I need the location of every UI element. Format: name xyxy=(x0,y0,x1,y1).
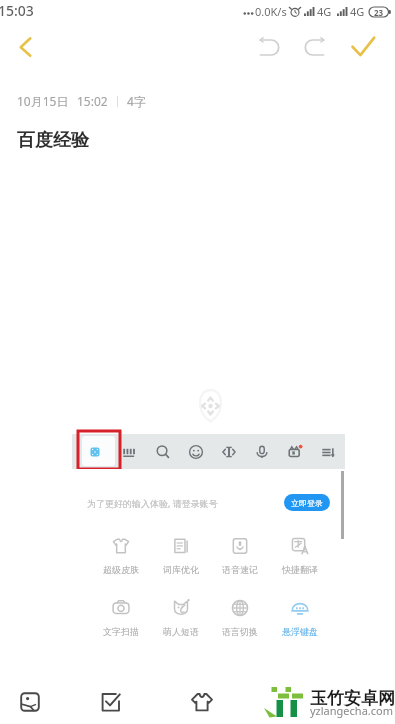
button[interactable]: Voice xyxy=(246,434,278,469)
button[interactable]: Back xyxy=(6,27,46,67)
button[interactable]: Panel xyxy=(79,434,111,469)
staticText: yzlangecha.com xyxy=(310,703,393,718)
button[interactable] xyxy=(154,592,208,638)
button[interactable] xyxy=(94,530,148,576)
staticText: 4G xyxy=(350,4,365,19)
staticText: 百度经验 xyxy=(17,129,89,152)
button[interactable]: Checklist xyxy=(92,683,130,721)
button[interactable]: Search xyxy=(147,434,179,469)
staticText: 10月15日 xyxy=(17,93,69,109)
button[interactable]: Undo xyxy=(256,34,284,60)
staticText: 语音速记 xyxy=(222,564,258,575)
staticText: 快捷翻译 xyxy=(282,564,318,575)
button[interactable]: Emoji xyxy=(180,434,212,469)
staticText: 玉竹安卓网 xyxy=(310,688,395,709)
staticText: 萌人短语 xyxy=(163,626,199,637)
staticText: 15:02 xyxy=(77,93,108,109)
button[interactable]: Insert image xyxy=(11,683,49,721)
button[interactable]: Move keyboard xyxy=(193,387,227,423)
button[interactable]: Keyboard xyxy=(113,434,145,469)
button[interactable]: More xyxy=(313,434,345,469)
staticText: 立即登录 xyxy=(291,498,323,508)
staticText: 悬浮键盘 xyxy=(282,626,318,637)
staticText: 15:03 xyxy=(0,1,34,20)
button[interactable] xyxy=(273,592,327,638)
staticText: 4G xyxy=(317,4,332,19)
button[interactable]: Style xyxy=(183,683,221,721)
button[interactable] xyxy=(154,530,208,576)
button[interactable]: Theme xyxy=(279,434,311,469)
staticText: 23 xyxy=(374,7,384,18)
button[interactable] xyxy=(213,530,267,576)
staticText: 语言切换 xyxy=(222,626,258,637)
staticText: 文字扫描 xyxy=(103,626,139,637)
button[interactable]: Redo xyxy=(300,34,328,60)
button[interactable]: 立即登录 xyxy=(284,494,330,511)
staticText: 超级皮肤 xyxy=(103,564,139,575)
button[interactable] xyxy=(273,530,327,576)
staticText: 为了更好的输入体验, 请登录账号 xyxy=(87,497,218,509)
button[interactable]: Cursor xyxy=(213,434,245,469)
button[interactable] xyxy=(213,592,267,638)
staticText: 0.0K/s xyxy=(255,4,287,19)
button[interactable]: Done xyxy=(348,33,380,61)
staticText: 词库优化 xyxy=(163,564,199,575)
button[interactable] xyxy=(94,592,148,638)
staticText: 4字 xyxy=(127,93,146,109)
